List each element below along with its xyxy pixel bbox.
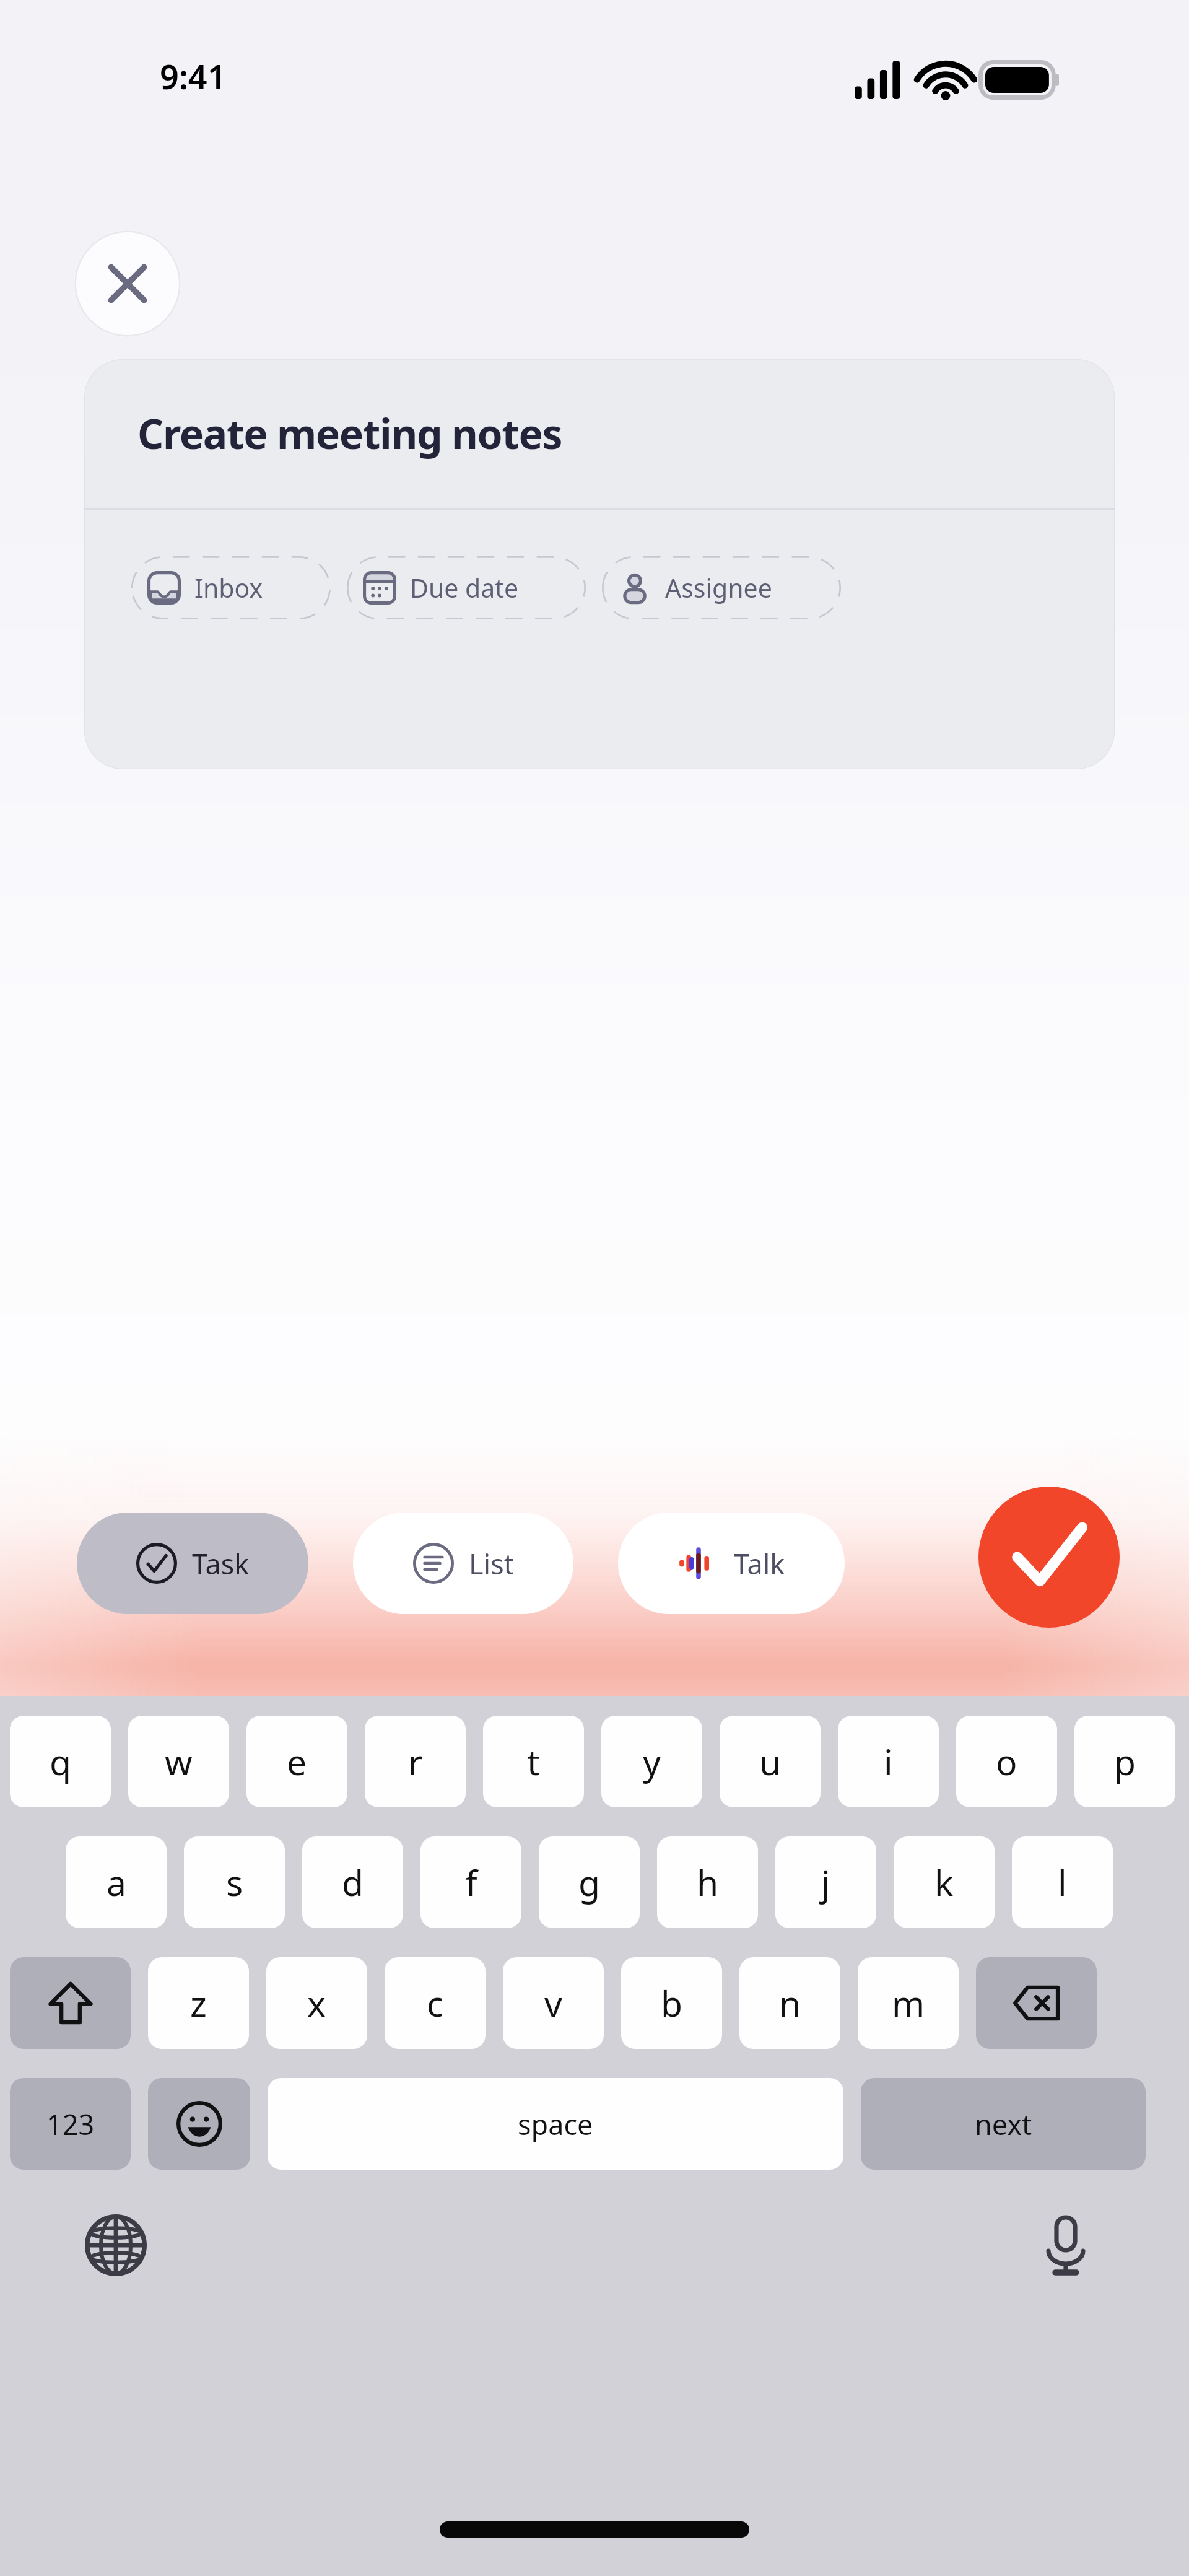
button[interactable]: 123 <box>10 2078 131 2170</box>
staticText: 9:41 <box>160 53 227 99</box>
button[interactable]: space <box>268 2078 843 2170</box>
button[interactable]: Task <box>77 1513 308 1614</box>
button[interactable]: Backspace <box>976 1957 1097 2049</box>
button[interactable]: List <box>353 1513 573 1614</box>
button[interactable]: p <box>1074 1716 1175 1807</box>
staticText: e <box>287 1737 307 1786</box>
button[interactable]: r <box>365 1716 466 1807</box>
button[interactable]: w <box>128 1716 229 1807</box>
button[interactable]: m <box>858 1957 959 2049</box>
button[interactable]: o <box>956 1716 1057 1807</box>
button[interactable]: t <box>483 1716 584 1807</box>
staticText: c <box>427 1979 444 2027</box>
staticText: q <box>50 1737 72 1786</box>
button[interactable]: n <box>739 1957 840 2049</box>
staticText: Create meeting notes <box>137 405 562 461</box>
button[interactable]: y <box>601 1716 702 1807</box>
staticText: o <box>996 1737 1017 1786</box>
button[interactable]: Shift <box>10 1957 131 2049</box>
button[interactable]: Due date <box>347 556 586 619</box>
staticText: l <box>1058 1858 1067 1906</box>
button[interactable]: x <box>266 1957 367 2049</box>
button[interactable]: z <box>148 1957 249 2049</box>
staticText: x <box>307 1979 326 2027</box>
button[interactable]: a <box>66 1836 167 1928</box>
staticText: next <box>975 2105 1032 2143</box>
staticText: Due date <box>410 570 519 605</box>
staticText: j <box>821 1858 830 1906</box>
staticText: i <box>884 1737 893 1786</box>
staticText: m <box>892 1979 925 2027</box>
button[interactable]: u <box>720 1716 821 1807</box>
staticText: space <box>518 2105 593 2143</box>
staticText: List <box>469 1545 514 1583</box>
staticText: a <box>107 1858 126 1906</box>
button[interactable]: Create meeting notes <box>84 359 1115 769</box>
button[interactable]: d <box>302 1836 403 1928</box>
staticText: y <box>643 1737 661 1786</box>
staticText: Talk <box>734 1545 785 1583</box>
button[interactable]: next <box>861 2078 1146 2170</box>
button[interactable]: Create task <box>978 1487 1120 1628</box>
staticText: s <box>226 1858 243 1906</box>
staticText: z <box>190 1979 207 2027</box>
button[interactable]: l <box>1012 1836 1113 1928</box>
button[interactable]: Emoji <box>148 2078 250 2170</box>
button[interactable]: s <box>184 1836 285 1928</box>
staticText: r <box>408 1737 423 1786</box>
staticText: g <box>578 1858 601 1906</box>
staticText: d <box>342 1858 364 1906</box>
staticText: 123 <box>46 2105 95 2143</box>
staticText: b <box>661 1979 683 2027</box>
staticText: Inbox <box>194 570 263 605</box>
button[interactable]: b <box>621 1957 722 2049</box>
button[interactable]: Voice input <box>1029 2209 1102 2282</box>
staticText: v <box>544 1979 562 2027</box>
button[interactable]: e <box>246 1716 347 1807</box>
button[interactable]: Inbox <box>131 556 331 619</box>
staticText: h <box>697 1858 719 1906</box>
staticText: k <box>934 1858 954 1906</box>
button[interactable]: k <box>894 1836 995 1928</box>
button[interactable]: j <box>775 1836 876 1928</box>
staticText: p <box>1114 1737 1136 1786</box>
button[interactable]: q <box>10 1716 111 1807</box>
staticText: t <box>527 1737 540 1786</box>
button[interactable]: c <box>385 1957 486 2049</box>
button[interactable]: f <box>420 1836 521 1928</box>
staticText: f <box>465 1858 477 1906</box>
button[interactable]: h <box>657 1836 758 1928</box>
button[interactable]: Talk <box>618 1513 845 1614</box>
staticText: n <box>779 1979 801 2027</box>
button[interactable]: Close <box>74 230 181 337</box>
button[interactable]: Assignee <box>602 556 841 619</box>
staticText: Task <box>192 1545 250 1583</box>
staticText: w <box>165 1737 193 1786</box>
button[interactable]: v <box>503 1957 604 2049</box>
staticText: Assignee <box>665 570 772 605</box>
button[interactable]: Switch language <box>79 2209 152 2282</box>
button[interactable]: i <box>838 1716 939 1807</box>
button[interactable]: g <box>539 1836 640 1928</box>
staticText: u <box>759 1737 782 1786</box>
